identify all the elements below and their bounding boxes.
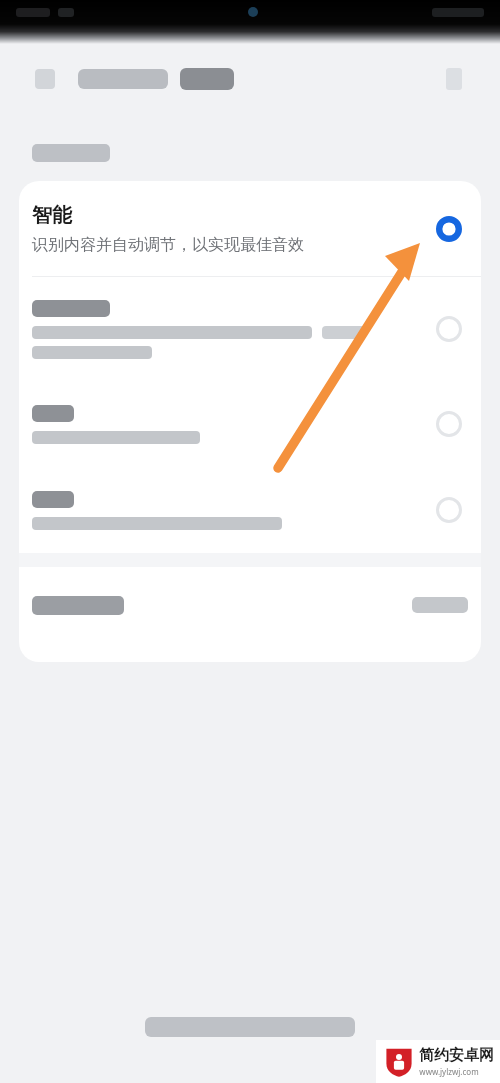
staticText: www.jylzwj.com: [419, 1066, 479, 1077]
button[interactable]: 智能 selected: [430, 210, 468, 248]
button[interactable]: Option: [19, 381, 481, 467]
button[interactable]: Option: [430, 491, 468, 529]
button[interactable]: 智能: [19, 181, 481, 276]
button[interactable]: [19, 567, 481, 643]
button[interactable]: Option: [430, 310, 468, 348]
button[interactable]: Option: [19, 277, 481, 381]
staticText: 智能: [32, 203, 72, 228]
staticText: 识别内容并自动调节，以实现最佳音效: [32, 235, 304, 255]
button[interactable]: Back: [30, 64, 60, 94]
button[interactable]: Option: [19, 467, 481, 553]
button[interactable]: More options: [438, 63, 470, 95]
button[interactable]: Option: [430, 405, 468, 443]
staticText: 简约安卓网: [419, 1046, 494, 1065]
